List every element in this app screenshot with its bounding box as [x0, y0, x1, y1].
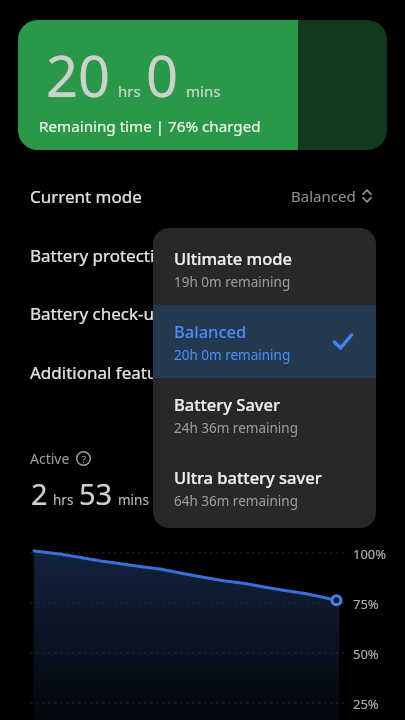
staticText: Ultra battery saver	[174, 466, 322, 488]
staticText: Additional features	[30, 361, 182, 384]
staticText: Battery protection	[30, 244, 176, 267]
staticText: 0	[146, 37, 179, 113]
staticText: 19h 0m remaining	[174, 273, 291, 291]
staticText: Ultimate mode	[174, 247, 292, 269]
staticText: mins	[118, 491, 149, 509]
button[interactable]: Battery protection	[0, 226, 405, 284]
button[interactable]: Current mode	[0, 167, 405, 225]
staticText: Battery check-up	[30, 302, 165, 325]
staticText: Active	[30, 449, 70, 468]
staticText: ?	[82, 453, 86, 465]
staticText: mins	[186, 81, 221, 101]
staticText: Balanced	[291, 186, 356, 206]
staticText: 2	[31, 474, 48, 513]
button[interactable]: Balanced	[153, 305, 376, 378]
staticText: 53	[79, 474, 113, 513]
button[interactable]: Additional features	[0, 343, 405, 401]
button[interactable]: Battery Saver	[153, 378, 376, 451]
staticText: 75%	[353, 595, 379, 613]
staticText: 20	[46, 37, 111, 113]
button[interactable]: Battery check-up	[0, 284, 405, 342]
staticText: 50%	[353, 645, 379, 663]
staticText: Remaining time | 76% charged	[39, 116, 261, 137]
button[interactable]: Ultra battery saver	[153, 451, 376, 524]
staticText: 20h 0m remaining	[174, 346, 291, 364]
button[interactable]: ?	[76, 451, 91, 466]
staticText: hrs	[53, 491, 74, 509]
staticText: hrs	[118, 81, 141, 101]
staticText: Battery Saver	[174, 393, 280, 415]
staticText: Current mode	[30, 185, 142, 208]
button[interactable]: 20	[18, 20, 387, 150]
staticText: 100%	[353, 545, 387, 563]
staticText: Balanced	[174, 320, 247, 342]
staticText: 64h 36m remaining	[174, 492, 298, 510]
staticText: 24h 36m remaining	[174, 419, 298, 437]
staticText: 25%	[353, 695, 379, 713]
button[interactable]: Ultimate mode	[153, 232, 376, 305]
